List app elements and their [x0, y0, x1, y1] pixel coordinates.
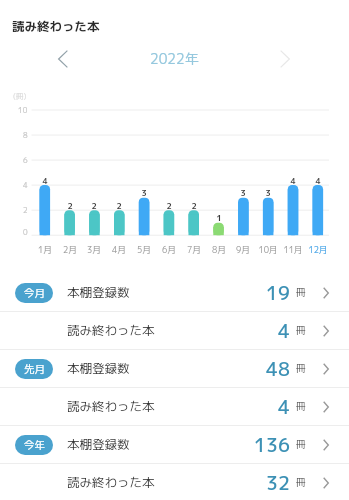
- button[interactable]: Previous year: [44, 44, 82, 74]
- staticText: 冊: [296, 285, 306, 299]
- staticText: 4: [278, 394, 290, 421]
- button[interactable]: 読み終わった本: [0, 312, 349, 350]
- staticText: 6: [23, 155, 28, 165]
- staticText: 9月: [236, 244, 250, 255]
- staticText: 4: [278, 318, 290, 345]
- staticText: 3月: [87, 244, 101, 255]
- staticText: 4: [23, 180, 28, 190]
- staticText: 8月: [212, 244, 226, 255]
- staticText: 4: [42, 175, 48, 184]
- staticText: 冊: [296, 399, 306, 413]
- staticText: 4月: [112, 244, 126, 255]
- staticText: 2: [166, 200, 172, 209]
- staticText: 先月: [24, 362, 45, 377]
- staticText: 冊: [296, 361, 306, 375]
- staticText: 2: [23, 205, 28, 215]
- staticText: 今月: [24, 286, 45, 301]
- staticText: 136: [254, 432, 290, 459]
- button[interactable]: 読み終わった本: [0, 464, 349, 500]
- staticText: 冊: [296, 475, 306, 489]
- button[interactable]: 読み終わった本: [0, 388, 349, 426]
- button[interactable]: Next year: [266, 44, 304, 74]
- staticText: 2022年: [150, 49, 199, 69]
- staticText: 2: [91, 200, 97, 209]
- staticText: 4: [290, 175, 296, 184]
- staticText: 5月: [137, 244, 151, 255]
- staticText: 2: [67, 200, 73, 209]
- staticText: 12月: [308, 244, 328, 255]
- staticText: 冊: [296, 323, 306, 337]
- button[interactable]: 今月: [0, 274, 349, 312]
- staticText: 3: [265, 187, 271, 196]
- staticText: 3: [240, 187, 246, 196]
- staticText: 3: [141, 187, 147, 196]
- staticText: 本棚登録数: [67, 436, 130, 453]
- staticText: 0: [23, 227, 28, 237]
- staticText: 19: [266, 280, 290, 307]
- staticText: 1: [216, 212, 222, 221]
- staticText: 10月: [258, 244, 278, 255]
- staticText: 読み終わった本: [12, 18, 100, 35]
- staticText: (冊): [13, 91, 27, 101]
- staticText: 2: [116, 200, 122, 209]
- staticText: 読み終わった本: [67, 474, 155, 491]
- staticText: 読み終わった本: [67, 322, 155, 339]
- staticText: 本棚登録数: [67, 360, 130, 377]
- button[interactable]: 先月: [0, 350, 349, 388]
- staticText: 冊: [296, 437, 306, 451]
- staticText: 48: [266, 356, 290, 383]
- staticText: 32: [266, 470, 290, 497]
- staticText: 2月: [63, 244, 77, 255]
- staticText: 10: [18, 105, 28, 115]
- staticText: 2: [191, 200, 197, 209]
- staticText: 8: [23, 130, 28, 140]
- staticText: 読み終わった本: [67, 398, 155, 415]
- staticText: 7月: [187, 244, 201, 255]
- staticText: 4: [315, 175, 321, 184]
- button[interactable]: 今年: [0, 426, 349, 464]
- staticText: 本棚登録数: [67, 284, 130, 301]
- staticText: 1月: [38, 244, 52, 255]
- staticText: 6月: [162, 244, 176, 255]
- staticText: 11月: [283, 244, 303, 255]
- staticText: 今年: [24, 438, 45, 453]
